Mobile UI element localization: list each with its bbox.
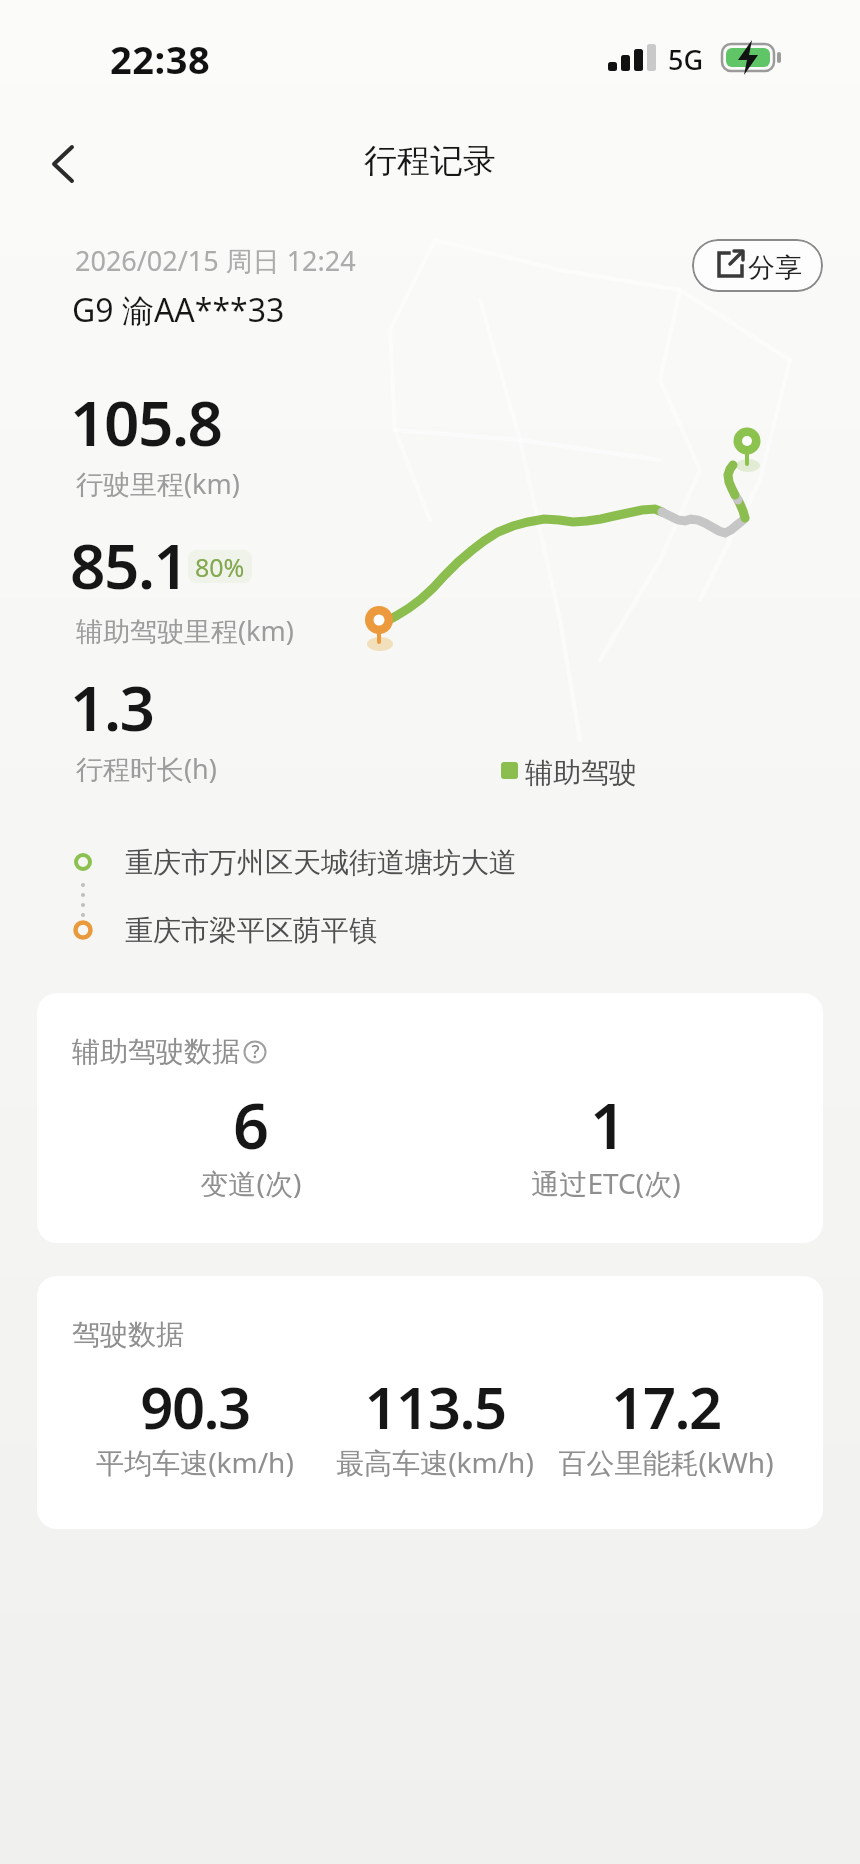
staticText: 17.2 <box>566 1367 766 1446</box>
staticText: 驾驶数据 <box>72 1317 184 1352</box>
staticText: G9 渝AA***33 <box>72 288 285 332</box>
button[interactable]: 分享 <box>692 239 823 292</box>
staticText: 85.1 <box>70 523 188 607</box>
staticText: 行程记录 <box>0 140 860 182</box>
staticText: 105.8 <box>70 380 222 464</box>
staticText: 90.3 <box>95 1367 295 1446</box>
staticText: 通过ETC(次) <box>506 1164 706 1202</box>
staticText: 行程时长(h) <box>76 750 217 787</box>
staticText: 最高车速(km/h) <box>315 1443 555 1481</box>
staticText: 辅助驾驶数据 <box>72 1034 240 1069</box>
staticText: 6 <box>151 1082 351 1168</box>
staticText: 5G <box>668 41 704 78</box>
staticText: 1 <box>508 1082 708 1168</box>
staticText: 分享 <box>748 251 802 285</box>
staticText: 2026/02/15 周日 12:24 <box>75 242 356 279</box>
staticText: 113.5 <box>335 1367 535 1446</box>
staticText: 辅助驾驶 <box>525 755 637 790</box>
staticText: 重庆市梁平区荫平镇 <box>125 913 377 948</box>
staticText: 辅助驾驶里程(km) <box>76 612 294 649</box>
staticText: 80% <box>195 550 245 583</box>
staticText: 22:38 <box>110 33 211 85</box>
staticText: 重庆市万州区天城街道塘坊大道 <box>125 845 517 880</box>
staticText: 行驶里程(km) <box>76 465 240 502</box>
button[interactable]: 辅助驾驶数据 <box>37 993 823 1243</box>
staticText: 平均车速(km/h) <box>75 1443 315 1481</box>
staticText: ? <box>250 1039 261 1064</box>
staticText: 百公里能耗(kWh) <box>546 1443 786 1481</box>
button[interactable] <box>40 135 90 191</box>
staticText: 变道(次) <box>151 1164 351 1202</box>
staticText: 1.3 <box>70 665 154 749</box>
button[interactable]: 驾驶数据 <box>37 1276 823 1529</box>
